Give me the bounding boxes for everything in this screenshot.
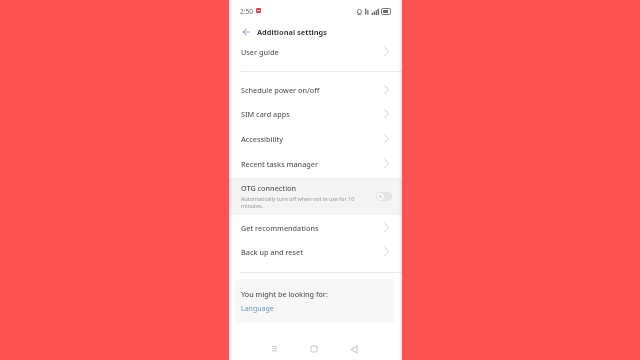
staticText: You might be looking for: [241, 289, 328, 299]
staticText: OTG connection [241, 183, 297, 193]
button[interactable]: Get recommendations [229, 215, 402, 240]
staticText: SIM card apps [241, 109, 290, 119]
staticText: Recent tasks manager [241, 159, 319, 169]
button[interactable]: Accessibility [229, 126, 402, 151]
staticText: 2:50 [240, 7, 253, 16]
button[interactable]: Home [305, 340, 323, 358]
button[interactable]: Language [241, 304, 274, 314]
button[interactable]: Recent tasks manager [229, 151, 402, 176]
button[interactable]: OTG connection [229, 178, 402, 215]
button[interactable]: Recent apps [265, 340, 283, 358]
staticText: Back up and reset [241, 247, 303, 257]
staticText: Schedule power on/off [241, 85, 320, 95]
staticText: Automatically turn off when not in use f… [241, 195, 371, 210]
button[interactable]: Schedule power on/off [229, 77, 402, 102]
button[interactable]: Back [345, 340, 363, 358]
staticText: User guide [241, 47, 279, 57]
staticText: Get recommendations [241, 223, 319, 233]
staticText: Additional settings [257, 27, 327, 37]
button[interactable]: Back [239, 25, 253, 39]
button[interactable]: User guide [229, 39, 402, 64]
button[interactable]: Back up and reset [229, 239, 402, 264]
staticText: Accessibility [241, 134, 284, 144]
button[interactable]: SIM card apps [229, 101, 402, 126]
